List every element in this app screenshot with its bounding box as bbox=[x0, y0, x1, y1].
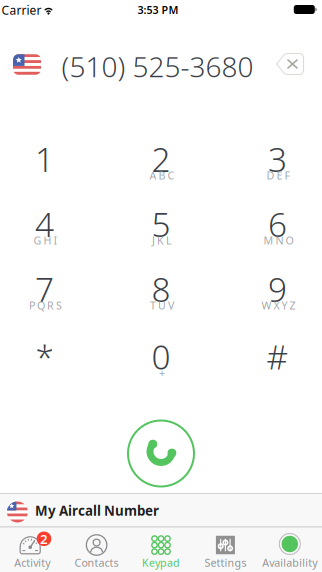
staticText: 4 bbox=[35, 202, 54, 246]
staticText: TUV bbox=[150, 298, 174, 312]
button[interactable]: Keypad bbox=[129, 526, 193, 572]
staticText: * bbox=[35, 334, 53, 379]
button[interactable]: 1 bbox=[0, 137, 91, 191]
staticText: Contacts bbox=[75, 556, 119, 570]
staticText: 0 bbox=[151, 334, 170, 379]
button[interactable]: 0 bbox=[114, 334, 208, 388]
staticText: GHI bbox=[33, 233, 57, 247]
staticText: 3:53 PM bbox=[137, 3, 178, 17]
staticText: My Aircall Number bbox=[35, 502, 159, 519]
button[interactable]: 2 bbox=[114, 137, 208, 191]
staticText: 9 bbox=[268, 267, 287, 311]
button[interactable]: Contacts bbox=[64, 526, 129, 572]
staticText: WXYZ bbox=[261, 298, 295, 312]
staticText: Keypad bbox=[142, 556, 180, 570]
staticText: 2 bbox=[40, 530, 48, 548]
staticText: 8 bbox=[151, 267, 170, 311]
button[interactable]: 5 bbox=[114, 202, 208, 256]
button[interactable]: 6 bbox=[230, 202, 322, 256]
staticText: 1 bbox=[35, 137, 54, 181]
staticText: 7 bbox=[35, 267, 54, 311]
staticText: PQRS bbox=[29, 298, 62, 312]
staticText: Availability bbox=[262, 556, 317, 570]
staticText: Activity bbox=[14, 556, 50, 570]
staticText: MNO bbox=[263, 233, 293, 247]
staticText: JKL bbox=[152, 233, 172, 247]
button[interactable]: Delete bbox=[275, 52, 304, 75]
staticText: # bbox=[266, 334, 288, 379]
button[interactable]: Availability bbox=[258, 526, 322, 572]
button[interactable]: 9 bbox=[230, 267, 322, 321]
staticText: 5 bbox=[151, 202, 170, 246]
button[interactable]: Call bbox=[127, 420, 194, 487]
staticText: (510) 525-3680 bbox=[61, 48, 253, 85]
button[interactable]: My Aircall Number bbox=[0, 493, 322, 526]
staticText: 3 bbox=[268, 137, 287, 181]
button[interactable]: 7 bbox=[0, 267, 91, 321]
button[interactable]: Settings bbox=[193, 526, 258, 572]
staticText: 2 bbox=[151, 137, 170, 181]
button[interactable]: 4 bbox=[0, 202, 91, 256]
staticText: + bbox=[159, 366, 165, 380]
button[interactable]: 2 bbox=[0, 526, 64, 572]
staticText: DEF bbox=[266, 168, 290, 182]
staticText: Settings bbox=[204, 556, 246, 570]
button[interactable]: # bbox=[230, 334, 322, 388]
staticText: ABC bbox=[149, 168, 174, 182]
button[interactable]: * bbox=[0, 334, 91, 388]
staticText: Carrier bbox=[1, 2, 41, 18]
button[interactable]: 3 bbox=[230, 137, 322, 191]
button[interactable]: 8 bbox=[114, 267, 208, 321]
staticText: 6 bbox=[268, 202, 287, 246]
